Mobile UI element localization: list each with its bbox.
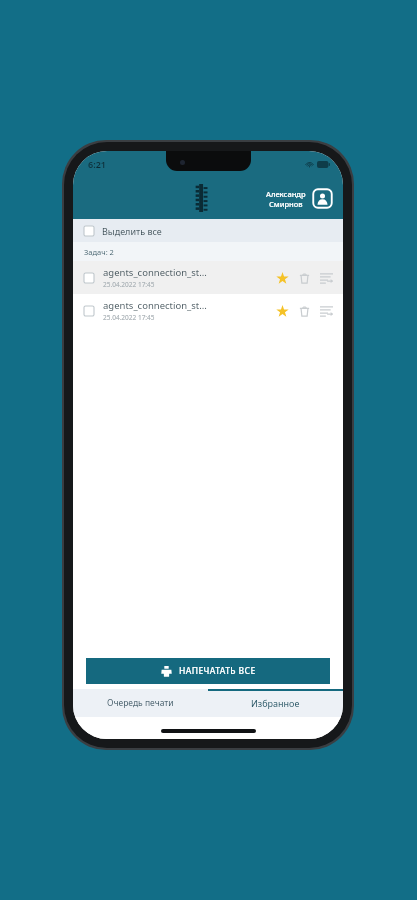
staticText: agents_connection_st... xyxy=(103,266,207,279)
staticText: 25.04.2022 17:45 xyxy=(103,313,155,322)
staticText: agents_connection_st... xyxy=(103,299,207,312)
button[interactable]: agents_connection_st... xyxy=(73,294,343,327)
staticText: Задач: 2 xyxy=(84,247,114,257)
button[interactable]: Избранное xyxy=(271,300,293,322)
button[interactable]: Удалить xyxy=(293,300,315,322)
staticText: Смирнов xyxy=(269,199,303,209)
button[interactable]: Избранное xyxy=(271,267,293,289)
button[interactable]: Удалить xyxy=(293,267,315,289)
staticText: 6:21 xyxy=(88,158,106,170)
button[interactable]: Очередь печати xyxy=(73,689,208,717)
staticText: Выделить все xyxy=(102,225,162,237)
button[interactable]: Выделить все xyxy=(73,219,343,242)
staticText: 25.04.2022 17:45 xyxy=(103,280,155,289)
staticText: Александр xyxy=(266,189,306,199)
staticText: НАПЕЧАТАТЬ ВСЕ xyxy=(179,665,256,677)
button[interactable]: Избранное xyxy=(208,689,343,717)
button[interactable]: НАПЕЧАТАТЬ ВСЕ xyxy=(86,658,330,684)
staticText: Избранное xyxy=(251,697,300,709)
button[interactable]: Напечатать xyxy=(315,267,337,289)
button[interactable]: Профиль xyxy=(312,188,333,209)
button[interactable]: agents_connection_st... xyxy=(73,261,343,294)
button[interactable]: Напечатать xyxy=(315,300,337,322)
staticText: Очередь печати xyxy=(107,697,174,709)
